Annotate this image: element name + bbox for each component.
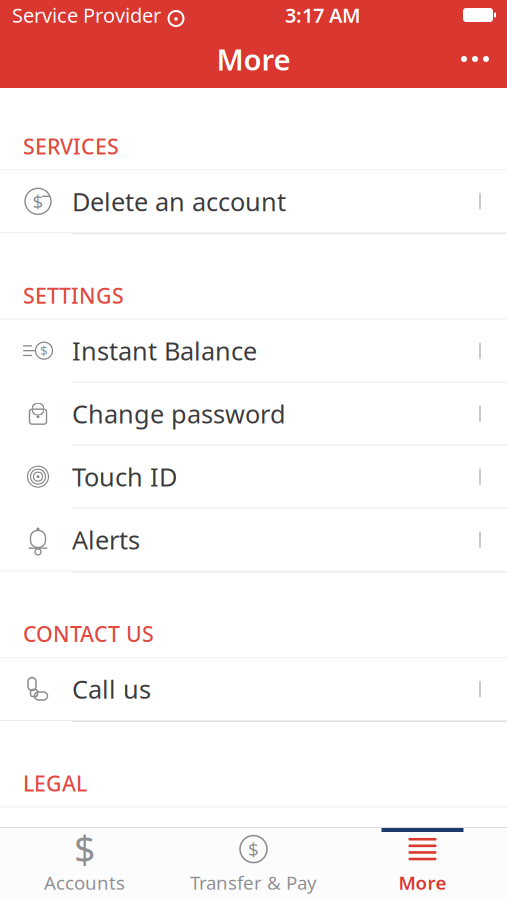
staticText: Accounts <box>44 870 125 895</box>
staticText: Alerts <box>72 523 140 556</box>
button[interactable]: $ <box>169 828 338 900</box>
button[interactable]: Change password <box>0 383 507 445</box>
button[interactable]: $ <box>0 320 507 382</box>
staticText: $ <box>40 342 48 359</box>
staticText: Instant Balance <box>72 334 257 367</box>
staticText: Service Provider <box>12 2 161 28</box>
staticText: SERVICES <box>23 132 119 160</box>
button[interactable]: Touch ID <box>0 446 507 508</box>
button[interactable]: $ <box>0 170 507 232</box>
staticText: SETTINGS <box>23 281 124 310</box>
button[interactable]: More <box>338 828 507 900</box>
staticText: $ <box>32 189 43 214</box>
staticText: Transfer & Pay <box>190 870 317 895</box>
staticText: $ <box>74 824 95 874</box>
staticText: More <box>398 870 446 895</box>
staticText: More <box>216 39 290 78</box>
staticText: LEGAL <box>23 769 87 797</box>
staticText: Call us <box>72 672 151 706</box>
button[interactable]: $ <box>0 828 169 900</box>
button[interactable]: Alerts <box>0 509 507 571</box>
staticText: Touch ID <box>72 460 177 493</box>
staticText: CONTACT US <box>23 620 154 648</box>
staticText: Delete an account <box>72 184 286 218</box>
staticText: 3:17 AM <box>285 2 361 28</box>
button[interactable]: More options <box>447 42 507 76</box>
staticText: $ <box>248 837 259 861</box>
staticText: Change password <box>72 397 286 430</box>
button[interactable]: Call us <box>0 658 507 720</box>
